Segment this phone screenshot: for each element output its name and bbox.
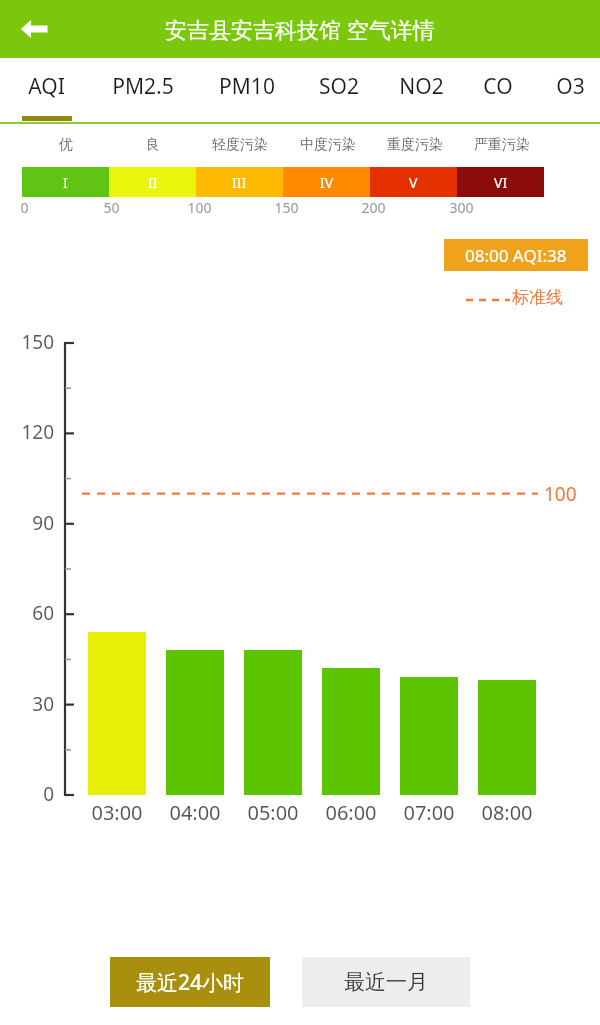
button[interactable]: NO2 [379,58,463,114]
button[interactable]: 最近24小时 [110,957,270,1007]
button[interactable]: 最近一月 [302,957,470,1007]
staticText: 08:00 [481,799,533,826]
staticText: O3 [556,72,585,101]
staticText: 50 [103,198,120,217]
staticText: PM10 [219,72,275,101]
staticText: 最近24小时 [136,968,245,997]
staticText: 0 [20,198,29,217]
button[interactable]: SO2 [297,58,381,114]
staticText: 100 [544,481,577,507]
staticText: 120 [21,419,54,445]
staticText: VI [494,173,508,192]
staticText: 03:00 [91,799,143,826]
staticText: 标准线 [512,287,563,308]
staticText: 150 [21,329,54,355]
staticText: V [409,173,418,192]
staticText: 轻度污染 [212,136,268,154]
staticText: II [148,173,158,192]
button[interactable]: CO [456,58,540,114]
staticText: I [63,173,68,192]
staticText: AQI [28,72,65,101]
button[interactable]: Back [8,3,60,55]
staticText: PM2.5 [112,72,174,101]
staticText: 安吉县安吉科技馆 空气详情 [165,14,435,44]
staticText: SO2 [319,72,359,101]
staticText: NO2 [399,72,444,101]
staticText: 07:00 [403,799,455,826]
button[interactable]: AQI [4,58,88,114]
staticText: 06:00 [325,799,377,826]
staticText: 良 [146,136,160,154]
staticText: 150 [274,198,299,217]
staticText: 30 [32,691,54,717]
staticText: 300 [449,198,474,217]
staticText: 100 [187,198,212,217]
button[interactable]: O3 [528,58,600,114]
staticText: 08:00 AQI:38 [465,244,567,267]
staticText: 严重污染 [474,136,530,154]
staticText: 200 [361,198,386,217]
staticText: 05:00 [247,799,299,826]
staticText: CO [483,72,513,101]
staticText: 中度污染 [300,136,356,154]
staticText: 优 [59,136,73,154]
staticText: 90 [32,510,54,536]
staticText: 60 [32,600,54,626]
staticText: 0 [43,781,54,807]
staticText: III [232,173,247,192]
staticText: IV [320,173,334,192]
staticText: 04:00 [169,799,221,826]
button[interactable]: PM2.5 [101,58,185,114]
button[interactable]: PM10 [205,58,289,114]
button[interactable]: 08:00 AQI:38 [444,239,588,271]
staticText: 重度污染 [387,136,443,154]
staticText: 最近一月 [344,969,428,995]
